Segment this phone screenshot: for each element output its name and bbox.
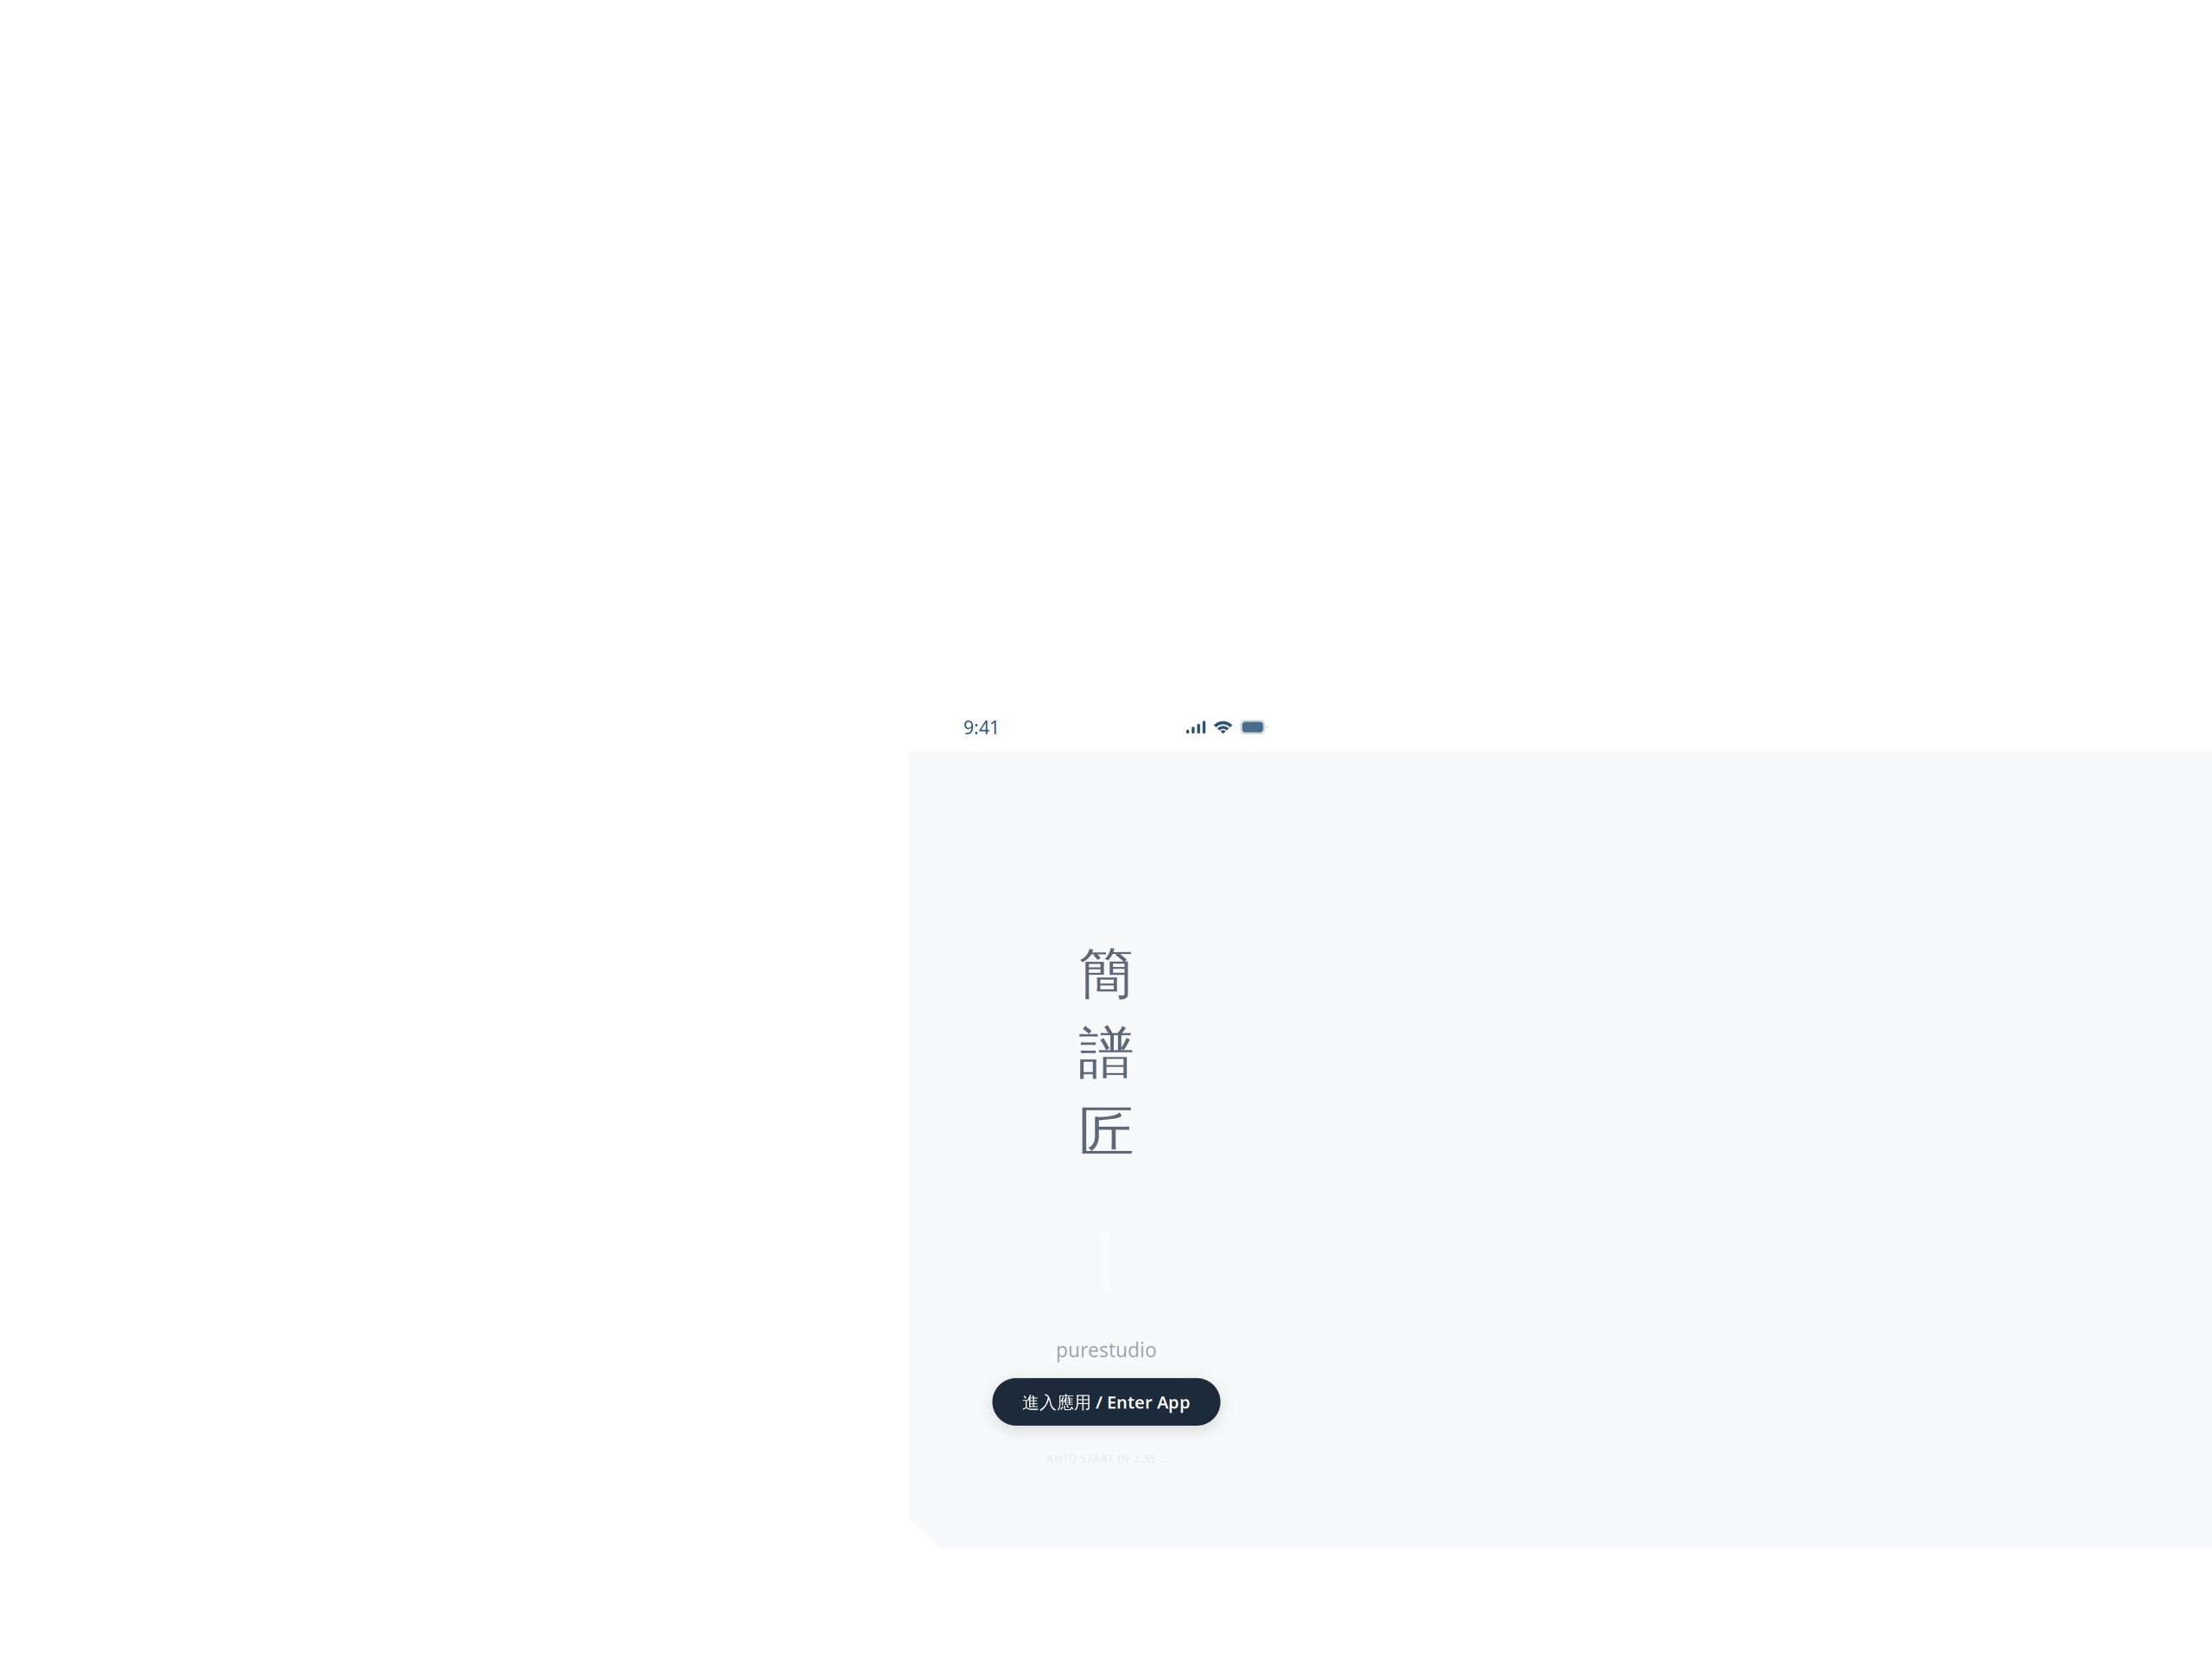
staticText: AUTO START IN 2.5S... — [1047, 1452, 1166, 1465]
staticText: purestudio — [1056, 1337, 1157, 1363]
button[interactable]: 進入應用 / Enter App — [992, 1378, 1220, 1426]
staticText: 進入應用 / Enter App — [1022, 1390, 1191, 1413]
staticText: 簡 — [1079, 940, 1134, 1008]
staticText: 譜 — [1079, 1019, 1134, 1087]
staticText: 匠 — [1079, 1098, 1134, 1166]
staticText: 9:41 — [963, 715, 1000, 739]
